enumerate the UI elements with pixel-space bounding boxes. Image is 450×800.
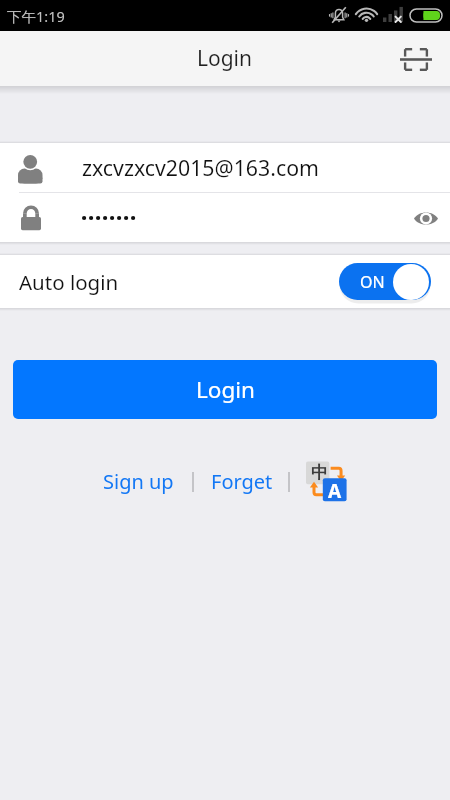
staticText: A bbox=[328, 478, 342, 501]
staticText: 中 bbox=[311, 462, 328, 483]
staticText: 下午1:19 bbox=[7, 6, 65, 26]
button[interactable]: zxcvzxcv2015@163.com bbox=[0, 143, 450, 192]
staticText: ON bbox=[360, 271, 385, 293]
button[interactable]: Translate bbox=[306, 461, 347, 502]
button[interactable]: Login bbox=[13, 360, 437, 419]
button[interactable]: Scan QR code bbox=[390, 33, 442, 85]
staticText: Auto login bbox=[19, 268, 119, 296]
button[interactable]: Show password bbox=[0, 193, 450, 242]
button[interactable]: Forget bbox=[211, 468, 273, 495]
button[interactable]: Show password bbox=[402, 194, 450, 242]
button[interactable]: ON bbox=[339, 263, 431, 304]
staticText: Login bbox=[196, 374, 255, 405]
button[interactable]: Auto login bbox=[0, 255, 450, 308]
staticText: zxcvzxcv2015@163.com bbox=[82, 153, 319, 182]
button[interactable]: Sign up bbox=[103, 468, 174, 495]
staticText: Login bbox=[197, 44, 253, 73]
